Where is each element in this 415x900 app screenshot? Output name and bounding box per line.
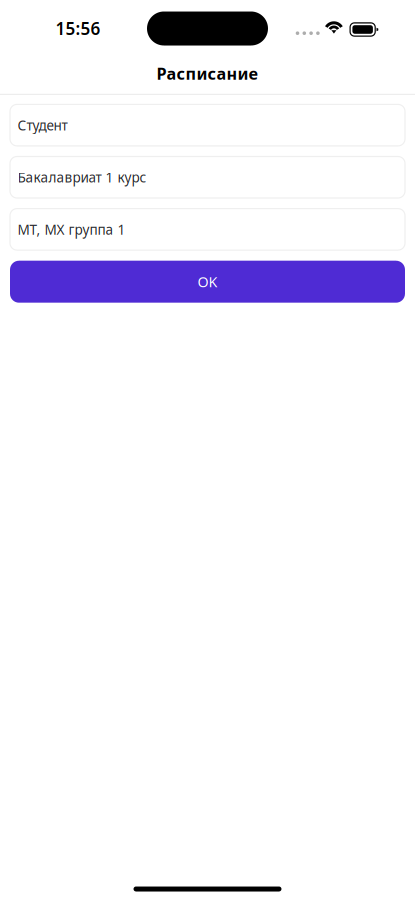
staticText: Студент xyxy=(17,116,67,134)
staticText: Бакалавриат 1 курс xyxy=(17,168,146,186)
staticText: МТ, МХ группа 1 xyxy=(17,220,125,239)
button[interactable]: МТ, МХ группа 1 xyxy=(10,209,405,250)
staticText: OK xyxy=(197,272,217,291)
staticText: Расписание xyxy=(156,62,258,85)
button[interactable]: Студент xyxy=(10,104,405,146)
button[interactable]: OK xyxy=(10,261,405,303)
button[interactable]: Бакалавриат 1 курс xyxy=(10,156,405,198)
staticText: 15:56 xyxy=(55,17,100,40)
